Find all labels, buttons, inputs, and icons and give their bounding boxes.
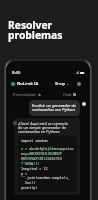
staticText: !"#$%&/()	[21, 161, 40, 166]
staticText: wxyzABCDEFGHIJKLMNOP	[21, 151, 62, 156]
button[interactable]: NoLimit IA	[11, 81, 39, 87]
staticText: 8:45	[12, 70, 21, 76]
staticText: Resolver problemas	[8, 18, 63, 42]
staticText: s = abcdefghijklmnopqrstuv	[21, 146, 74, 151]
staticText: Personalizar	[13, 92, 37, 97]
staticText: Chat	[63, 92, 72, 97]
staticText: print(p)	[21, 185, 38, 190]
button[interactable]: New chat	[77, 82, 81, 86]
button[interactable]: Chat	[48, 89, 90, 99]
staticText: lon))	[21, 180, 36, 185]
staticText: QRSTUVWXYZ0123456789	[21, 156, 62, 161]
staticText: p = ''.join(random.sample(s,	[21, 171, 75, 180]
staticText: ¡Claro! Aquí está un ejemplo de un simpl…	[18, 121, 68, 134]
button[interactable]: Escribir un generador de contraseñas con…	[29, 100, 80, 116]
button[interactable]: Personalizar	[6, 89, 48, 99]
staticText: Shop	[55, 81, 65, 87]
staticText: Escribir un generador de contraseñas con…	[32, 103, 77, 113]
staticText: import random	[21, 138, 48, 143]
staticText: longitud = 12	[21, 166, 48, 171]
staticText: NoLimit IA	[17, 81, 39, 87]
button[interactable]: Shop	[55, 81, 69, 87]
